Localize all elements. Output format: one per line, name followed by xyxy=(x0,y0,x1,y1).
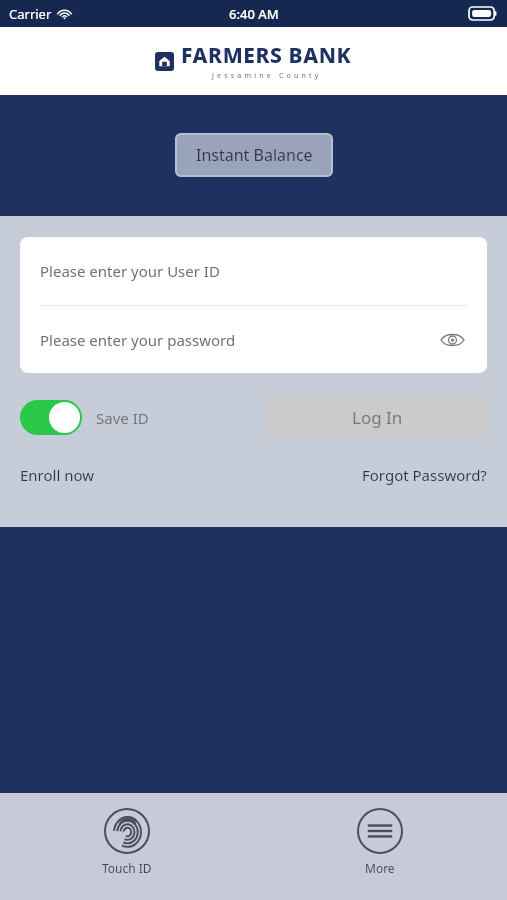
staticText: Forgot Password? xyxy=(362,465,487,485)
button[interactable]: Log In xyxy=(267,397,487,437)
staticText: Touch ID xyxy=(102,860,152,876)
button[interactable]: Enroll now xyxy=(20,465,95,485)
button[interactable]: Touch ID xyxy=(86,806,168,878)
button[interactable]: Show password xyxy=(436,324,468,356)
staticText: Log In xyxy=(352,406,403,429)
staticText: FARMERS BANK xyxy=(181,41,352,70)
staticText: 6:40 AM xyxy=(229,5,279,23)
staticText: Please enter your User ID xyxy=(40,261,220,281)
button[interactable]: More xyxy=(341,806,419,878)
staticText: Instant Balance xyxy=(196,144,313,166)
staticText: Carrier xyxy=(9,5,52,23)
staticText: Save ID xyxy=(96,408,149,428)
staticText: Jessamine County xyxy=(212,71,322,81)
button[interactable]: Save ID xyxy=(20,400,149,435)
button[interactable]: Please enter your password xyxy=(20,306,487,373)
button[interactable]: Please enter your User ID xyxy=(20,237,487,305)
button[interactable]: Forgot Password? xyxy=(362,465,487,485)
staticText: Please enter your password xyxy=(40,330,236,350)
staticText: More xyxy=(365,860,395,876)
button[interactable]: Instant Balance xyxy=(175,133,333,177)
staticText: Enroll now xyxy=(20,465,95,485)
